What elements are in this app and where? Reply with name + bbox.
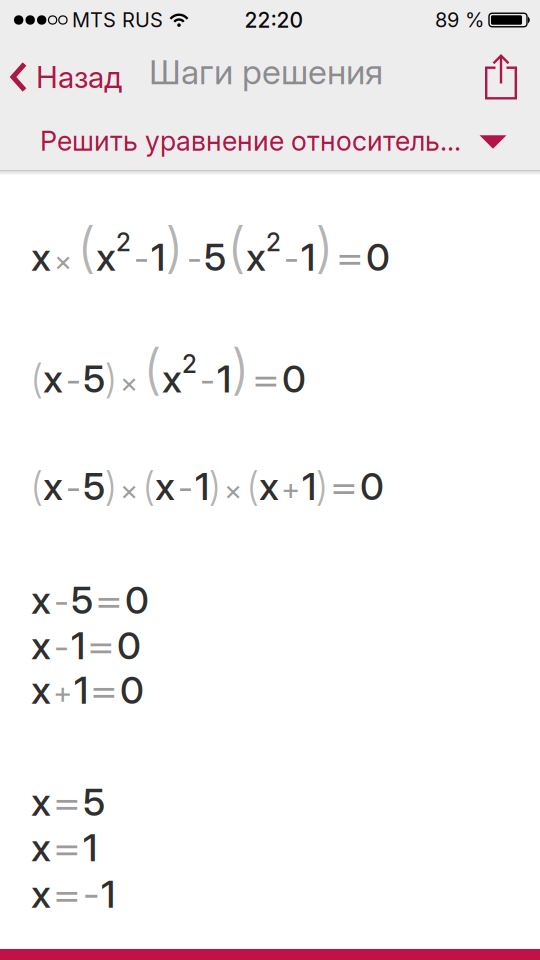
staticText: MTS RUS <box>72 8 163 32</box>
staticText: x × (x2 - 1) - 5 (x2 - 1) = 0 <box>31 216 390 279</box>
button[interactable]: Назад <box>0 59 122 95</box>
staticText: x = 5 <box>31 780 105 824</box>
staticText: x + 1 = 0 <box>31 668 144 712</box>
button[interactable]: Share <box>485 54 540 99</box>
staticText: x = - 1 <box>31 872 115 916</box>
staticText: 89 % <box>435 8 484 32</box>
staticText: x - 1 = 0 <box>31 623 141 668</box>
staticText: (x - 5) × (x - 1) × (x + 1) = 0 <box>31 462 384 509</box>
staticText: x = 1 <box>31 825 97 870</box>
staticText: (x - 5) × (x2 - 1) = 0 <box>31 337 306 402</box>
staticText: 22:20 <box>244 7 303 33</box>
staticText: Решить уравнение относитель... <box>40 125 461 157</box>
staticText: x - 5 = 0 <box>31 578 149 622</box>
button[interactable]: Решить уравнение относитель... <box>0 114 540 170</box>
staticText: Назад <box>36 59 122 95</box>
staticText: Шаги решения <box>149 51 383 92</box>
